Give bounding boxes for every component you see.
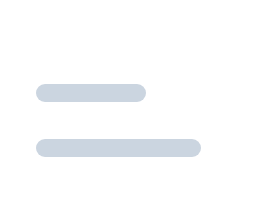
- button[interactable]: Previous message card: [36, 0, 254, 164]
- button[interactable]: Message card: [0, 36, 218, 200]
